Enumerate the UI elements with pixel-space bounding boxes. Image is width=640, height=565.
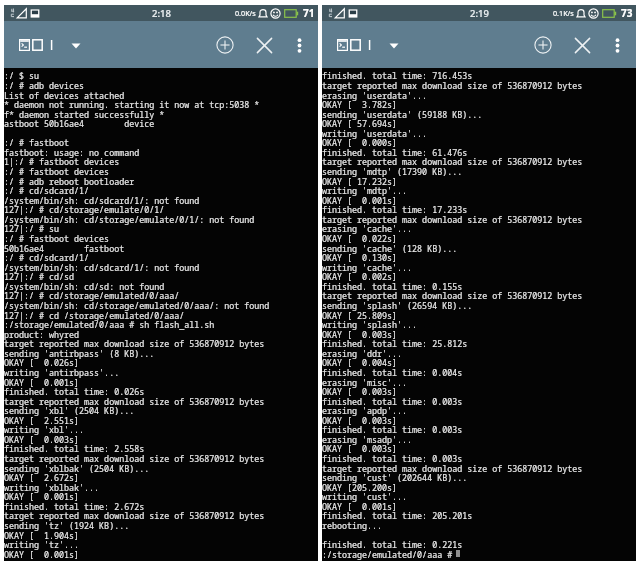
staticText: * daemon not running. starting it now at…: [4, 99, 318, 110]
staticText: product: whyred: [4, 329, 318, 340]
staticText: OKAY [ 0.004s]: [322, 357, 636, 368]
staticText: :/ # fastboot devices: [4, 166, 318, 177]
staticText: :/ # cd/sdcard/1/: [4, 185, 318, 196]
staticText: OKAY [ 17.232s]: [322, 176, 636, 187]
staticText: 127|:/ # cd /storage/emulated/0/aaa/: [4, 310, 318, 321]
staticText: OKAY [ 0.001s]: [322, 195, 636, 206]
staticText: OKAY [ 0.001s]: [4, 491, 318, 502]
staticText: finished. total time: 0.155s: [322, 281, 636, 292]
staticText: /system/bin/sh: cd/storage/emulated/0/aa…: [4, 300, 318, 311]
staticText: sending 'userdata' (59188 KB)...: [322, 109, 636, 120]
button[interactable]: More options: [285, 31, 313, 59]
staticText: OKAY [ 0.002s]: [322, 271, 636, 282]
staticText: sending 'cust' (202644 KB)...: [322, 472, 636, 483]
staticText: finished. total time: 0.003s: [322, 396, 636, 407]
staticText: /system/bin/sh: cd/sdcard/1/: not found: [4, 195, 318, 206]
staticText: OKAY [ 0.003s]: [4, 434, 318, 445]
staticText: :/ # fastboot devices: [4, 233, 318, 244]
staticText: 50b16ae4 fastboot: [4, 243, 318, 254]
staticText: :/ # adb devices: [4, 80, 318, 91]
staticText: f* daemon started successfully *: [4, 109, 318, 120]
staticText: OKAY [ 57.694s]: [322, 118, 636, 129]
staticText: fastboot: usage: no command: [4, 147, 318, 158]
staticText: target reported max download size of 536…: [4, 338, 318, 349]
staticText: erasing 'msadp'...: [322, 434, 636, 445]
staticText: writing 'cust'...: [322, 491, 636, 502]
staticText: finished. total time: 0.221s: [322, 539, 636, 550]
staticText: sending 'cache' (128 KB)...: [322, 243, 636, 254]
staticText: finished. total time: 25.812s: [322, 338, 636, 349]
staticText: OKAY [ 1.904s]: [4, 530, 318, 541]
staticText: 127|:/ # cd/sd: [4, 271, 318, 282]
button[interactable]: Close session: [566, 29, 598, 61]
staticText: finished. total time: 0.004s: [322, 367, 636, 378]
staticText: writing 'xblbak'...: [4, 482, 318, 493]
staticText: OKAY [ 0.001s]: [4, 377, 318, 388]
staticText: erasing 'cache'...: [322, 223, 636, 234]
staticText: OKAY [ 0.003s]: [322, 415, 636, 426]
staticText: finished. total time: 17.233s: [322, 204, 636, 215]
button[interactable]: New session: [209, 29, 241, 61]
staticText: target reported max download size of 536…: [322, 463, 636, 474]
staticText: 127|:/ # su: [4, 223, 318, 234]
staticText: OKAY [ 0.000s]: [322, 137, 636, 148]
staticText: sending 'xbl' (2504 KB)...: [4, 405, 318, 416]
button[interactable]: Close session: [248, 29, 280, 61]
staticText: :/ $ su: [4, 70, 318, 81]
staticText: astboot 50b16ae4 device: [4, 118, 318, 129]
staticText: 0.0K/s: [235, 8, 256, 18]
staticText: sending 'mdtp' (17390 KB)...: [322, 166, 636, 177]
staticText: OKAY [ 0.001s]: [4, 549, 318, 560]
button[interactable]: More options: [603, 31, 631, 59]
staticText: 127|:/ # cd/storage/emulate/0/1/: [4, 204, 318, 215]
staticText: target reported max download size of 536…: [322, 214, 636, 225]
staticText: rebooting...: [322, 520, 636, 531]
staticText: OKAY [205.200s]: [322, 482, 636, 493]
staticText: erasing 'ddr'...: [322, 348, 636, 359]
staticText: finished. total time: 2.558s: [4, 443, 318, 454]
button[interactable]: New session: [527, 29, 559, 61]
staticText: :/storage/emulated/0/aaa # sh flash_all.…: [4, 319, 318, 330]
staticText: OKAY [ 25.809s]: [322, 310, 636, 321]
staticText: finished. total time: 2.672s: [4, 501, 318, 512]
staticText: /system/bin/sh: cd/storage/emulate/0/1/:…: [4, 214, 318, 225]
staticText: writing 'tz'...: [4, 539, 318, 550]
staticText: target reported max download size of 536…: [322, 290, 636, 301]
staticText: sending 'antirbpass' (8 KB)...: [4, 348, 318, 359]
staticText: 73: [621, 6, 633, 20]
staticText: target reported max download size of 536…: [4, 510, 318, 521]
staticText: erasing 'apdp'...: [322, 405, 636, 416]
staticText: finished. total time: 716.453s: [322, 70, 636, 81]
staticText: OKAY [ 2.551s]: [4, 415, 318, 426]
staticText: [322, 530, 636, 541]
staticText: OKAY [ 0.003s]: [322, 329, 636, 340]
staticText: /system/bin/sh: cd/sd: not found: [4, 281, 318, 292]
staticText: finished. total time: 0.003s: [322, 424, 636, 435]
staticText: writing 'xbl'...: [4, 424, 318, 435]
staticText: List of devices attached: [4, 90, 318, 101]
staticText: target reported max download size of 536…: [4, 453, 318, 464]
staticText: 71: [303, 6, 315, 20]
staticText: sending 'xblbak' (2504 KB)...: [4, 463, 318, 474]
staticText: sending 'splash' (26594 KB)...: [322, 300, 636, 311]
staticText: OKAY [ 0.130s]: [322, 252, 636, 263]
staticText: erasing 'userdata'...: [322, 90, 636, 101]
staticText: 0.1K/s: [553, 8, 574, 18]
staticText: finished. total time: 0.003s: [322, 453, 636, 464]
staticText: writing 'splash'...: [322, 319, 636, 330]
staticText: /system/bin/sh: cd/sdcard/1/: not found: [4, 262, 318, 273]
staticText: writing 'cache'...: [322, 262, 636, 273]
button[interactable]: Sessions: [13, 29, 89, 60]
staticText: OKAY [ 0.022s]: [322, 233, 636, 244]
staticText: 2:19: [470, 7, 489, 20]
staticText: target reported max download size of 536…: [322, 80, 636, 91]
staticText: finished. total time: 61.476s: [322, 147, 636, 158]
staticText: OKAY [ 0.003s]: [322, 386, 636, 397]
staticText: sending 'tz' (1924 KB)...: [4, 520, 318, 531]
staticText: writing 'antirbpass'...: [4, 367, 318, 378]
staticText: OKAY [ 0.026s]: [4, 357, 318, 368]
staticText: OKAY [ 0.003s]: [322, 443, 636, 454]
staticText: :/ # cd/sdcard/1/: [4, 252, 318, 263]
button[interactable]: Sessions: [331, 29, 407, 60]
staticText: :/ # adb reboot bootloader: [4, 176, 318, 187]
